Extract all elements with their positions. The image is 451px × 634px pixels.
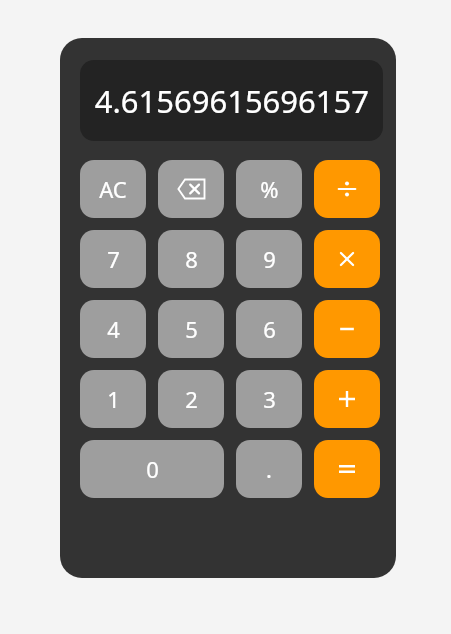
staticText: 8 xyxy=(185,244,198,274)
staticText: 1 xyxy=(107,384,120,414)
button[interactable]: 1 xyxy=(80,370,146,428)
staticText: 6 xyxy=(263,314,276,344)
button[interactable]: 4 xyxy=(80,300,146,358)
staticText: 5 xyxy=(185,314,198,344)
button[interactable]: Equals xyxy=(314,440,380,498)
button[interactable]: % xyxy=(236,160,302,218)
button[interactable]: . xyxy=(236,440,302,498)
staticText: 4 xyxy=(107,314,120,344)
button[interactable]: AC xyxy=(80,160,146,218)
button[interactable]: Minus xyxy=(314,300,380,358)
button[interactable]: 8 xyxy=(158,230,224,288)
button[interactable]: Backspace xyxy=(158,160,224,218)
staticText: 7 xyxy=(107,244,120,274)
button[interactable]: 3 xyxy=(236,370,302,428)
staticText: % xyxy=(260,174,279,204)
button[interactable]: Multiply xyxy=(314,230,380,288)
button[interactable]: Divide xyxy=(314,160,380,218)
staticText: 2 xyxy=(185,384,198,414)
staticText: AC xyxy=(99,174,127,204)
button[interactable]: 6 xyxy=(236,300,302,358)
button[interactable]: 7 xyxy=(80,230,146,288)
staticText: 0 xyxy=(146,454,159,484)
button[interactable]: 5 xyxy=(158,300,224,358)
button[interactable]: Plus xyxy=(314,370,380,428)
staticText: 9 xyxy=(263,244,276,274)
button[interactable]: 9 xyxy=(236,230,302,288)
staticText: . xyxy=(266,454,272,484)
staticText: 3 xyxy=(263,384,276,414)
button[interactable]: 2 xyxy=(158,370,224,428)
staticText: 4.61569615696157 xyxy=(94,80,369,122)
button[interactable]: 0 xyxy=(80,440,224,498)
